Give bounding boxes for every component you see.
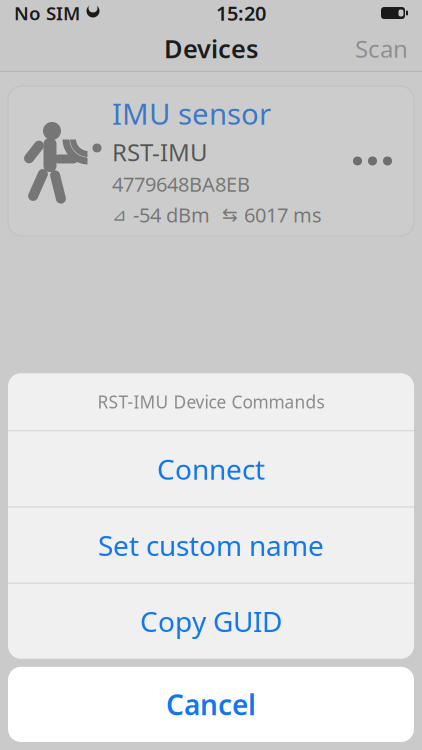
staticText: Scanner xyxy=(180,725,242,746)
staticText: Devices xyxy=(164,32,258,65)
staticText: -54 dBm xyxy=(133,201,210,228)
button[interactable]: Copy GUID xyxy=(8,584,414,659)
staticText: RST-IMU Device Commands xyxy=(97,390,324,413)
button[interactable]: Cancel xyxy=(8,667,414,742)
staticText: Cancel xyxy=(166,686,256,723)
staticText: 15:20 xyxy=(216,0,266,26)
staticText: 6017 ms xyxy=(244,201,322,228)
staticText: Copy GUID xyxy=(140,603,282,640)
staticText: RST-IMU xyxy=(112,136,208,168)
staticText: Scan xyxy=(355,33,408,64)
staticText: Connect xyxy=(157,450,265,487)
staticText: ⊿ xyxy=(112,205,127,224)
button[interactable]: IMU sensor xyxy=(8,86,414,236)
staticText: 4779648BA8EB xyxy=(112,171,250,197)
button[interactable]: Scan xyxy=(341,25,422,72)
staticText: No SIM xyxy=(14,1,80,25)
staticText: IMU sensor xyxy=(112,94,271,133)
staticText: ⇆ xyxy=(222,204,238,225)
button[interactable]: Connect xyxy=(8,431,414,506)
button[interactable]: Set custom name xyxy=(8,507,414,583)
staticText: Set custom name xyxy=(98,526,324,564)
